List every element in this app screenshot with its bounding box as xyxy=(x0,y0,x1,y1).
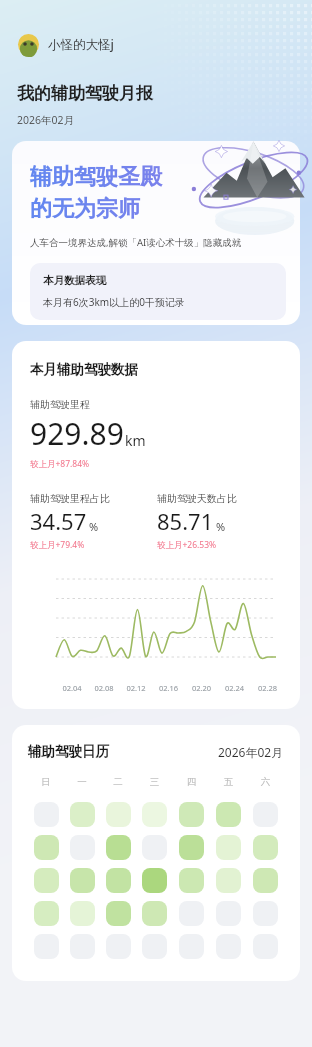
staticText: 02.04 xyxy=(56,683,88,693)
button[interactable] xyxy=(253,868,278,893)
button[interactable] xyxy=(216,934,241,959)
staticText: km xyxy=(125,431,146,450)
staticText: 02.08 xyxy=(88,683,120,693)
button[interactable] xyxy=(253,934,278,959)
staticText: 辅助驾驶天数占比 xyxy=(157,492,237,505)
button[interactable] xyxy=(179,835,204,860)
staticText: 辅助驾驶里程占比 xyxy=(30,492,110,505)
button[interactable]: 辅助驾驶天数占比 xyxy=(157,492,284,551)
staticText: 2026年02月 xyxy=(17,113,75,127)
button[interactable] xyxy=(179,802,204,827)
staticText: 辅助驾驶里程 xyxy=(30,398,90,411)
button[interactable] xyxy=(253,802,278,827)
staticText: 较上月+79.4% xyxy=(30,539,85,551)
button[interactable] xyxy=(106,934,131,959)
staticText: 一 xyxy=(64,776,100,788)
staticText: 本月数据表现 xyxy=(43,274,106,287)
staticText: 本月辅助驾驶数据 xyxy=(30,361,138,378)
button[interactable] xyxy=(34,868,59,893)
button[interactable]: 本月数据表现 xyxy=(30,263,286,320)
button[interactable]: 小怪的大怪j xyxy=(16,32,116,57)
staticText: 较上月+87.84% xyxy=(30,458,90,470)
staticText: 辅助驾驶圣殿 xyxy=(30,163,162,191)
button[interactable] xyxy=(70,934,95,959)
button[interactable] xyxy=(253,835,278,860)
staticText: 本月有6次3km以上的0干预记录 xyxy=(43,295,185,309)
button[interactable] xyxy=(70,868,95,893)
button[interactable] xyxy=(70,835,95,860)
staticText: 二 xyxy=(100,776,136,788)
button[interactable] xyxy=(70,802,95,827)
staticText: 34.57 xyxy=(30,506,87,536)
button[interactable] xyxy=(142,835,167,860)
button[interactable] xyxy=(179,868,204,893)
button[interactable]: 辅助驾驶日历 xyxy=(12,725,300,981)
staticText: 02.24 xyxy=(218,683,251,693)
button[interactable] xyxy=(179,901,204,926)
staticText: % xyxy=(89,519,99,534)
staticText: 六 xyxy=(247,776,284,788)
button[interactable]: 辅助驾驶里程占比 xyxy=(30,492,157,551)
button[interactable] xyxy=(142,901,167,926)
button[interactable] xyxy=(106,835,131,860)
button[interactable] xyxy=(106,901,131,926)
staticText: 我的辅助驾驶月报 xyxy=(17,83,153,104)
staticText: 小怪的大怪j xyxy=(48,36,114,53)
button[interactable] xyxy=(106,802,131,827)
staticText: 的无为宗师 xyxy=(30,195,140,223)
staticText: 2026年02月 xyxy=(218,744,284,760)
button[interactable]: 本月辅助驾驶数据 xyxy=(12,341,300,709)
staticText: % xyxy=(216,519,226,534)
button[interactable] xyxy=(34,835,59,860)
button[interactable] xyxy=(106,868,131,893)
button[interactable] xyxy=(142,802,167,827)
staticText: 日 xyxy=(28,776,64,788)
button[interactable] xyxy=(142,868,167,893)
staticText: 02.28 xyxy=(251,683,284,693)
staticText: 02.12 xyxy=(120,683,152,693)
button[interactable] xyxy=(253,901,278,926)
button[interactable] xyxy=(216,868,241,893)
staticText: 较上月+26.53% xyxy=(157,539,217,551)
staticText: 三 xyxy=(136,776,173,788)
staticText: 02.16 xyxy=(152,683,185,693)
button[interactable] xyxy=(34,934,59,959)
button[interactable] xyxy=(142,934,167,959)
button[interactable]: 辅助驾驶圣殿 xyxy=(12,141,300,325)
staticText: 人车合一境界达成,解锁「AI读心术十级」隐藏成就 xyxy=(30,236,242,249)
button[interactable] xyxy=(216,901,241,926)
button[interactable] xyxy=(216,802,241,827)
staticText: 02.20 xyxy=(185,683,218,693)
button[interactable] xyxy=(34,802,59,827)
button[interactable] xyxy=(70,901,95,926)
staticText: 929.89 xyxy=(30,413,124,454)
button[interactable] xyxy=(179,934,204,959)
staticText: 五 xyxy=(210,776,247,788)
staticText: 四 xyxy=(173,776,210,788)
staticText: 辅助驾驶日历 xyxy=(28,743,109,760)
staticText: 85.71 xyxy=(157,506,214,536)
button[interactable] xyxy=(34,901,59,926)
button[interactable] xyxy=(216,835,241,860)
